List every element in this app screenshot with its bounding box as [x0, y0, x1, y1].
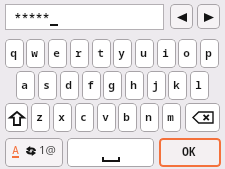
button[interactable]: r: [70, 39, 89, 68]
button[interactable]: Move cursor left: [170, 4, 193, 29]
button[interactable]: j: [147, 71, 166, 100]
staticText: o: [183, 45, 190, 60]
staticText: z: [36, 109, 43, 124]
button[interactable]: Move cursor right: [197, 4, 220, 29]
button[interactable]: v: [97, 103, 116, 132]
staticText: x: [58, 109, 65, 124]
button[interactable]: c: [75, 103, 94, 132]
staticText: k: [173, 77, 180, 92]
button[interactable]: e: [48, 39, 67, 68]
button[interactable]: f: [82, 71, 101, 100]
staticText: i: [162, 45, 169, 60]
button[interactable]: Shift: [5, 103, 28, 132]
button[interactable]: Backspace: [185, 103, 220, 132]
button[interactable]: w: [26, 39, 45, 68]
staticText: q: [10, 45, 17, 60]
staticText: l: [195, 77, 202, 92]
staticText: y: [118, 45, 125, 60]
staticText: e: [53, 45, 60, 60]
button[interactable]: a: [16, 71, 35, 100]
button[interactable]: y: [113, 39, 132, 68]
button[interactable]: m: [162, 103, 181, 132]
staticText: p: [205, 45, 212, 60]
staticText: OK: [182, 144, 196, 160]
staticText: g: [108, 77, 115, 92]
button[interactable]: Switch input mode: [5, 138, 63, 167]
button[interactable]: Space: [67, 138, 154, 167]
staticText: A: [12, 142, 19, 157]
button[interactable]: o: [178, 39, 197, 68]
button[interactable]: s: [38, 71, 57, 100]
button[interactable]: h: [125, 71, 144, 100]
staticText: *****: [14, 10, 50, 26]
button[interactable]: p: [200, 39, 219, 68]
staticText: h: [130, 77, 137, 92]
button[interactable]: d: [60, 71, 79, 100]
button[interactable]: l: [190, 71, 209, 100]
button[interactable]: n: [140, 103, 159, 132]
staticText: r: [75, 45, 82, 60]
staticText: n: [145, 109, 152, 124]
staticText: j: [152, 77, 159, 92]
staticText: s: [43, 77, 50, 92]
button[interactable]: OK: [159, 138, 221, 167]
button[interactable]: x: [53, 103, 72, 132]
staticText: m: [167, 109, 174, 124]
staticText: b: [123, 109, 130, 124]
button[interactable]: i: [157, 39, 176, 68]
staticText: u: [140, 45, 147, 60]
staticText: t: [97, 45, 104, 60]
button[interactable]: u: [135, 39, 154, 68]
staticText: c: [80, 109, 87, 124]
button[interactable]: t: [92, 39, 111, 68]
staticText: a: [21, 77, 28, 92]
button[interactable]: g: [103, 71, 122, 100]
button[interactable]: q: [5, 39, 24, 68]
button[interactable]: b: [118, 103, 137, 132]
staticText: w: [31, 45, 38, 60]
button[interactable]: z: [31, 103, 50, 132]
staticText: f: [87, 77, 94, 92]
button[interactable]: Password entry field: [5, 4, 164, 30]
staticText: v: [102, 109, 109, 124]
staticText: 1@: [39, 142, 56, 158]
button[interactable]: k: [168, 71, 187, 100]
staticText: d: [65, 77, 72, 92]
